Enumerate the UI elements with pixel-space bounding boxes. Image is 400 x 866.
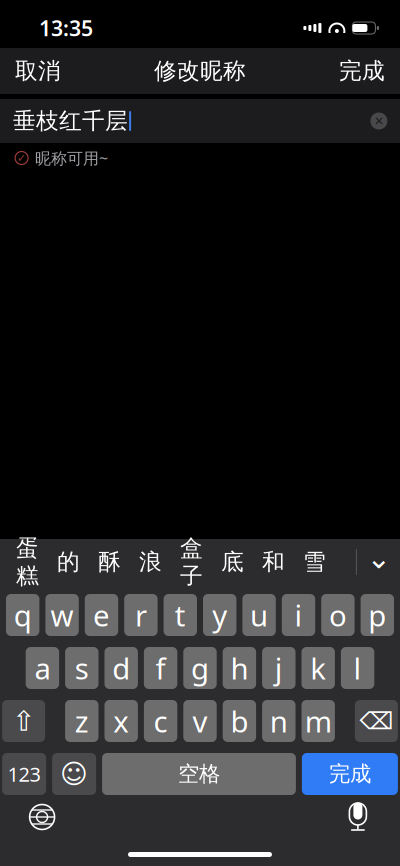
staticText: q <box>14 595 32 634</box>
staticText: m <box>305 701 332 740</box>
button[interactable]: 清除 <box>363 105 395 137</box>
button[interactable]: 底 <box>212 539 253 585</box>
button[interactable]: 雪 <box>294 539 335 585</box>
button[interactable]: p <box>361 594 394 636</box>
button[interactable]: r <box>124 594 158 636</box>
staticText: 123 <box>8 761 41 787</box>
staticText: i <box>294 595 302 634</box>
staticText: 取消 <box>15 57 61 85</box>
staticText: j <box>275 648 283 687</box>
button[interactable]: u <box>242 594 276 636</box>
button[interactable]: i <box>282 594 315 636</box>
staticText: v <box>192 701 207 740</box>
staticText: 浪 <box>139 548 162 576</box>
button[interactable]: Shift <box>2 700 45 742</box>
staticText: 蛋糕 <box>16 534 39 590</box>
button[interactable]: 盒子 <box>171 525 212 599</box>
button[interactable]: k <box>301 647 335 689</box>
staticText: x <box>113 701 129 740</box>
button[interactable]: 完成 <box>323 45 400 97</box>
button[interactable]: 蛋糕 <box>7 525 48 599</box>
button[interactable]: 浪 <box>130 539 171 585</box>
button[interactable]: g <box>183 647 217 689</box>
staticText: t <box>175 595 186 634</box>
staticText: o <box>329 595 347 634</box>
button[interactable]: o <box>321 594 355 636</box>
button[interactable]: q <box>6 594 39 636</box>
staticText: y <box>212 595 227 634</box>
staticText: h <box>230 648 248 687</box>
staticText: a <box>34 648 50 687</box>
staticText: 雪 <box>303 548 326 576</box>
button[interactable]: m <box>301 700 335 742</box>
button[interactable]: y <box>203 594 236 636</box>
staticText: ✕ <box>374 114 384 128</box>
staticText: ☺ <box>60 759 88 789</box>
button[interactable]: a <box>26 647 59 689</box>
staticText: d <box>112 648 130 687</box>
staticText: ⌫ <box>359 707 393 735</box>
button[interactable]: d <box>104 647 138 689</box>
staticText: s <box>75 648 89 687</box>
staticText: ✓ <box>17 152 26 164</box>
staticText: e <box>93 595 110 634</box>
button[interactable]: w <box>45 594 79 636</box>
button[interactable]: x <box>104 700 138 742</box>
button[interactable]: 取消 <box>0 45 77 97</box>
staticText: 底 <box>221 548 244 576</box>
staticText: 修改昵称 <box>154 57 246 85</box>
button[interactable]: z <box>65 700 98 742</box>
staticText: z <box>75 701 89 740</box>
button[interactable]: 酥 <box>89 539 130 585</box>
button[interactable]: s <box>65 647 98 689</box>
button[interactable]: j <box>262 647 295 689</box>
button[interactable]: h <box>223 647 256 689</box>
staticText: 垂枝红千层 <box>13 107 128 135</box>
staticText: 和 <box>262 548 285 576</box>
staticText: r <box>135 595 147 634</box>
staticText: 的 <box>57 548 80 576</box>
staticText: 13:35 <box>39 14 93 42</box>
button[interactable]: 和 <box>253 539 294 585</box>
staticText: c <box>154 701 168 740</box>
staticText: u <box>250 595 268 634</box>
staticText: k <box>310 648 326 687</box>
staticText: w <box>51 595 74 634</box>
button[interactable]: 的 <box>48 539 89 585</box>
button[interactable]: 语音输入 <box>334 795 382 839</box>
button[interactable]: 删除 <box>355 700 398 742</box>
staticText: 完成 <box>329 761 371 787</box>
staticText: l <box>354 648 362 687</box>
button[interactable]: 切换输入法 <box>18 795 66 839</box>
button[interactable]: t <box>164 594 197 636</box>
button[interactable]: 表情 <box>52 753 96 795</box>
staticText: 盒子 <box>180 534 203 590</box>
staticText: f <box>156 648 166 687</box>
button[interactable]: 完成 <box>302 753 398 795</box>
button[interactable]: n <box>262 700 295 742</box>
button[interactable]: 123 <box>2 753 46 795</box>
button[interactable]: l <box>341 647 374 689</box>
button[interactable]: v <box>183 700 217 742</box>
staticText: 完成 <box>339 57 385 85</box>
button[interactable]: f <box>144 647 177 689</box>
button[interactable]: 收起键盘 <box>357 540 400 584</box>
staticText: 酥 <box>98 548 121 576</box>
button[interactable]: 空格 <box>102 753 296 795</box>
staticText: g <box>191 648 209 687</box>
button[interactable]: e <box>85 594 118 636</box>
button[interactable]: c <box>144 700 177 742</box>
staticText: p <box>368 595 386 634</box>
staticText: b <box>230 701 248 740</box>
staticText: ⇧ <box>12 705 35 737</box>
staticText: ⌄ <box>366 541 391 575</box>
button[interactable]: b <box>223 700 256 742</box>
staticText: 空格 <box>178 761 220 787</box>
staticText: 昵称可用~ <box>35 147 108 169</box>
staticText: n <box>270 701 288 740</box>
